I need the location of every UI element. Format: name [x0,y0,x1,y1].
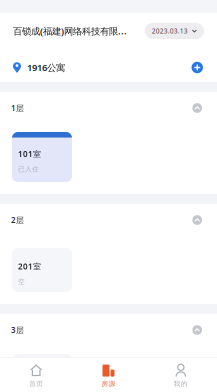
button[interactable]: 2023.03.13 [145,23,204,39]
button[interactable]: Collapse 3层 [192,325,202,335]
staticText: 1916公寓 [27,61,65,74]
staticText: 2023.03.13 [152,27,188,35]
button[interactable]: Collapse 1层 [192,103,202,113]
staticText: 3层 [11,325,24,335]
button[interactable]: 我的 [145,357,217,392]
staticText: 首页 [29,380,43,388]
button[interactable]: Add apartment [191,62,203,73]
button[interactable]: 301室 [12,354,72,392]
staticText: 101室 [18,148,41,159]
button[interactable]: 首页 [0,357,72,392]
staticText: 201室 [18,261,41,272]
staticText: 百锁成(福建)网络科技有限... [13,25,127,37]
staticText: 1层 [11,103,24,113]
staticText: 空 [18,278,25,286]
staticText: 已入住 [18,165,39,173]
button[interactable]: 201室 [12,248,72,292]
button[interactable]: 101室 [12,132,72,182]
staticText: 房源 [101,380,115,388]
staticText: 2层 [11,215,24,225]
staticText: 我的 [174,380,188,388]
staticText: 301室 [18,367,41,378]
button[interactable]: Collapse 2层 [192,215,202,225]
button[interactable]: 房源 [72,357,145,392]
